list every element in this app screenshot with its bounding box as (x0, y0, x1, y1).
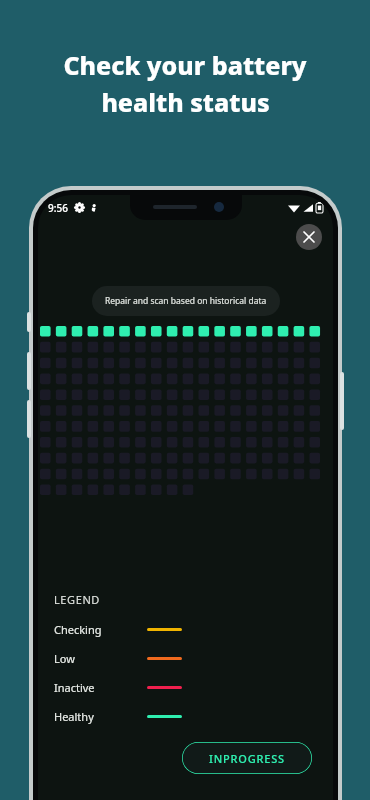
button[interactable]: Checking (54, 622, 182, 637)
button[interactable]: INPROGRESS (182, 742, 312, 774)
staticText: Check your battery (63, 48, 307, 82)
button[interactable]: Healthy (54, 709, 182, 724)
staticText: LEGEND (54, 592, 100, 607)
staticText: health status (101, 85, 270, 119)
staticText: Checking (54, 622, 102, 637)
button[interactable]: Inactive (54, 680, 182, 695)
staticText: INPROGRESS (209, 751, 285, 766)
staticText: Low (54, 651, 75, 666)
staticText: Healthy (54, 709, 94, 724)
button[interactable]: Close (296, 224, 322, 250)
button[interactable]: Repair and scan based on historical data (92, 286, 280, 316)
button[interactable]: Low (54, 651, 182, 666)
staticText: Inactive (54, 680, 95, 695)
staticText: 9:56 (48, 201, 68, 215)
staticText: Repair and scan based on historical data (105, 295, 267, 307)
other: Settings (75, 203, 84, 212)
